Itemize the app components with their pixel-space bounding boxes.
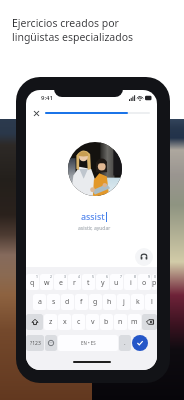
button[interactable]: s [47,294,60,310]
button[interactable]: Key [142,314,157,330]
button[interactable]: . [119,335,131,351]
button[interactable]: b [100,314,113,330]
button[interactable]: 5 [82,274,95,290]
staticText: 3 [64,274,66,279]
staticText: ?123 [30,340,41,347]
staticText: l [151,297,153,307]
staticText: 6 [106,274,108,279]
staticText: n [118,317,123,327]
button[interactable]: f [75,294,88,310]
button[interactable]: l [145,294,157,310]
button[interactable]: a [33,294,46,310]
staticText: w [44,278,50,288]
staticText: EN • ES [81,340,96,346]
button[interactable]: 6 [96,274,109,290]
staticText: 5 [92,274,94,279]
staticText: 9:41 [41,94,53,102]
staticText: r [73,278,76,288]
staticText: x [63,317,67,327]
staticText: k [136,297,140,307]
staticText: z [49,317,53,327]
button[interactable]: j [117,294,130,310]
staticText: b [104,317,109,327]
staticText: v [91,317,95,327]
staticText: f [80,297,83,307]
staticText: 8 [134,274,136,279]
staticText: j [123,297,125,307]
button[interactable]: 9 [138,274,151,290]
staticText: y [101,278,105,288]
staticText: 4 [78,274,80,279]
button[interactable]: d [61,294,74,310]
staticText: t [87,278,90,288]
button[interactable]: 1 [26,274,39,290]
staticText: q [30,278,35,288]
staticText: . [124,339,126,347]
staticText: Ejercicios creados por [12,16,119,30]
staticText: d [65,297,70,307]
button[interactable]: Key [26,314,43,330]
staticText: 1 [36,274,38,279]
button[interactable]: g [89,294,102,310]
staticText: s [52,297,56,307]
button[interactable]: v [86,314,99,330]
button[interactable]: 4 [68,274,81,290]
button[interactable]: 7 [110,274,123,290]
button[interactable]: Listen [135,248,153,266]
staticText: lingüistas especializados [12,30,134,44]
staticText: m [131,317,138,327]
staticText: o [142,278,147,288]
button[interactable]: 2 [40,274,53,290]
button[interactable]: x [58,314,71,330]
staticText: e [59,278,63,288]
staticText: c [77,317,81,327]
staticText: asistir, ayudar [78,225,111,232]
button[interactable]: c [72,314,85,330]
staticText: 2 [50,274,52,279]
button[interactable]: m [128,314,141,330]
button[interactable]: 0 [152,274,157,290]
staticText: u [114,278,119,288]
button[interactable]: k [131,294,144,310]
button[interactable]: 3 [54,274,67,290]
staticText: h [107,297,112,307]
button[interactable]: ?123 [26,335,44,351]
button[interactable]: Key [45,335,57,351]
staticText: 7 [120,274,122,279]
button[interactable]: Enter [132,335,148,351]
staticText: assist [81,211,105,223]
staticText: a [38,297,42,307]
staticText: i [130,278,132,288]
button[interactable]: z [44,314,57,330]
staticText: 9 [148,274,150,279]
button[interactable]: n [114,314,127,330]
staticText: p [152,278,157,288]
button[interactable]: h [103,294,116,310]
staticText: 0 [154,274,156,279]
button[interactable]: EN • ES [58,335,118,351]
staticText: g [93,297,98,307]
button[interactable]: Close [32,109,41,118]
button[interactable]: 8 [124,274,137,290]
